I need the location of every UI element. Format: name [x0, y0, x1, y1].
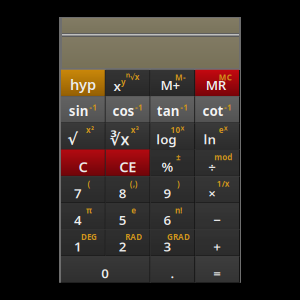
- staticText: -1: [89, 102, 97, 113]
- staticText: DEG: [81, 232, 97, 242]
- staticText: 2: [119, 237, 127, 255]
- button[interactable]: =: [195, 256, 240, 283]
- staticText: n!: [175, 205, 182, 216]
- button[interactable]: 0: [61, 256, 150, 283]
- staticText: log: [156, 130, 176, 148]
- button[interactable]: M-: [150, 70, 195, 97]
- staticText: =: [213, 264, 221, 282]
- staticText: +: [213, 237, 221, 255]
- staticText: −: [213, 211, 221, 229]
- button[interactable]: +: [195, 230, 240, 256]
- button[interactable]: CE: [106, 150, 151, 176]
- button[interactable]: x³: [106, 123, 151, 150]
- staticText: MR: [206, 76, 227, 94]
- staticText: 7: [74, 184, 82, 202]
- staticText: GRAD: [167, 232, 190, 242]
- staticText: ±: [176, 152, 181, 162]
- button[interactable]: 1/x: [195, 176, 240, 203]
- button[interactable]: n: [106, 70, 151, 97]
- button[interactable]: cot: [195, 97, 240, 123]
- button[interactable]: .: [150, 256, 195, 283]
- button[interactable]: (: [61, 176, 106, 203]
- button[interactable]: DEG: [61, 230, 106, 256]
- staticText: √x: [130, 71, 140, 82]
- staticText: 4: [74, 211, 82, 229]
- button[interactable]: mod: [195, 150, 240, 176]
- staticText: %: [161, 158, 173, 175]
- button[interactable]: C: [61, 150, 106, 176]
- staticText: MC: [219, 72, 232, 83]
- staticText: ): [177, 178, 180, 189]
- staticText: sin: [69, 102, 89, 120]
- button[interactable]: GRAD: [150, 230, 195, 256]
- staticText: RAD: [125, 232, 142, 242]
- button[interactable]: x²: [61, 123, 106, 150]
- button[interactable]: sin: [61, 97, 106, 123]
- staticText: (: [87, 178, 90, 189]
- staticText: π: [86, 205, 92, 216]
- button[interactable]: 10: [150, 123, 195, 150]
- button[interactable]: n!: [150, 203, 195, 230]
- staticText: M-: [175, 72, 186, 83]
- button[interactable]: π: [61, 203, 106, 230]
- staticText: 0: [101, 264, 109, 282]
- staticText: mod: [214, 152, 232, 162]
- button[interactable]: e: [195, 123, 240, 150]
- button[interactable]: ): [150, 176, 195, 203]
- button[interactable]: e: [106, 203, 151, 230]
- staticText: ∛x: [109, 128, 129, 150]
- staticText: M+: [160, 76, 180, 94]
- staticText: x: [224, 124, 228, 132]
- staticText: x²: [86, 125, 94, 135]
- staticText: 9: [163, 184, 171, 202]
- staticText: (,): [130, 178, 138, 189]
- staticText: x³: [131, 125, 139, 135]
- staticText: tan: [157, 102, 180, 120]
- button[interactable]: MC: [195, 70, 240, 97]
- staticText: e: [219, 125, 224, 135]
- staticText: hyp: [70, 75, 96, 94]
- staticText: x: [180, 124, 184, 132]
- button[interactable]: −: [195, 203, 240, 230]
- staticText: 10: [170, 125, 180, 135]
- staticText: x: [113, 77, 120, 95]
- staticText: cos: [112, 102, 134, 120]
- staticText: CE: [119, 157, 136, 176]
- staticText: -1: [224, 102, 232, 113]
- staticText: 6: [163, 211, 171, 229]
- staticText: 8: [119, 184, 127, 202]
- staticText: 3: [163, 237, 171, 255]
- button[interactable]: ±: [150, 150, 195, 176]
- staticText: n: [126, 70, 130, 79]
- staticText: cot: [202, 102, 223, 120]
- button[interactable]: hyp: [61, 70, 106, 97]
- staticText: ×: [208, 184, 216, 202]
- staticText: -1: [135, 102, 143, 113]
- staticText: 5: [119, 211, 127, 229]
- staticText: √: [67, 130, 78, 148]
- button[interactable]: tan: [150, 97, 195, 123]
- staticText: ÷: [208, 158, 216, 175]
- staticText: e: [131, 205, 136, 216]
- button[interactable]: (,): [106, 176, 151, 203]
- button[interactable]: cos: [106, 97, 151, 123]
- staticText: y: [121, 76, 126, 87]
- staticText: C: [78, 157, 87, 176]
- staticText: .: [170, 264, 174, 282]
- staticText: -1: [180, 102, 188, 113]
- staticText: ln: [203, 130, 216, 148]
- button[interactable]: RAD: [106, 230, 151, 256]
- staticText: 1/x: [217, 178, 230, 189]
- staticText: 1: [74, 237, 82, 255]
